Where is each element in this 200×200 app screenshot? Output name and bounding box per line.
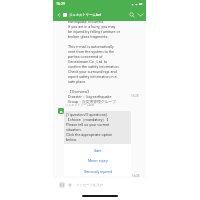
staticText: parties concerned of — [68, 54, 103, 58]
staticText: confirm the safety information. — [68, 64, 120, 68]
staticText: ジェネストリームbot — [69, 13, 101, 17]
staticText: Click the appropriate option — [66, 132, 113, 136]
staticText: Genestream Co., Ltd. to — [68, 59, 108, 63]
staticText: Disaster： big earthquake — [68, 94, 112, 99]
button[interactable]: Seriously injured — [64, 165, 131, 176]
staticText: safe place. — [68, 79, 87, 83]
staticText: Safe — [94, 148, 102, 152]
staticText: This e-mail is automatically — [68, 44, 114, 48]
staticText: If you act in a hurry, you may — [68, 24, 116, 28]
staticText: 【Overview】 — [68, 89, 91, 94]
staticText: sent from the system to the — [68, 49, 115, 53]
staticText: 【choice（mandatory）】 — [66, 117, 111, 122]
staticText: Minor injury — [88, 158, 108, 162]
staticText: situation. — [66, 127, 82, 131]
staticText: Please tell us your current — [66, 122, 110, 126]
staticText: メッセージを入力 — [76, 183, 103, 187]
button[interactable]: Minor injury — [64, 155, 131, 165]
staticText: ジェネストリームbot — [65, 103, 94, 107]
staticText: be injured by falling furniture or — [68, 29, 120, 33]
staticText: report safety information in a — [68, 74, 117, 78]
button[interactable]: Back — [55, 11, 63, 19]
staticText: Group：次災害管理グループ — [68, 99, 117, 104]
staticText: 16:28 — [132, 174, 140, 178]
staticText: [1 question/5 questions] — [66, 112, 107, 116]
button[interactable]: Safe — [64, 144, 131, 155]
button[interactable]: Search — [127, 10, 136, 19]
staticText: 16:28 — [131, 94, 139, 98]
staticText: n — [60, 109, 63, 114]
staticText: earthquake occurred. — [68, 19, 104, 23]
staticText: below. — [66, 137, 77, 141]
staticText: Check your surroundings and — [68, 69, 117, 73]
staticText: Seriously injured — [84, 169, 112, 173]
staticText: 16:29 — [56, 2, 65, 6]
button[interactable]: More options — [136, 10, 145, 19]
staticText: broken glass fragments. — [68, 34, 109, 38]
button[interactable]: Add — [67, 182, 73, 188]
button[interactable]: Menu — [59, 182, 65, 188]
